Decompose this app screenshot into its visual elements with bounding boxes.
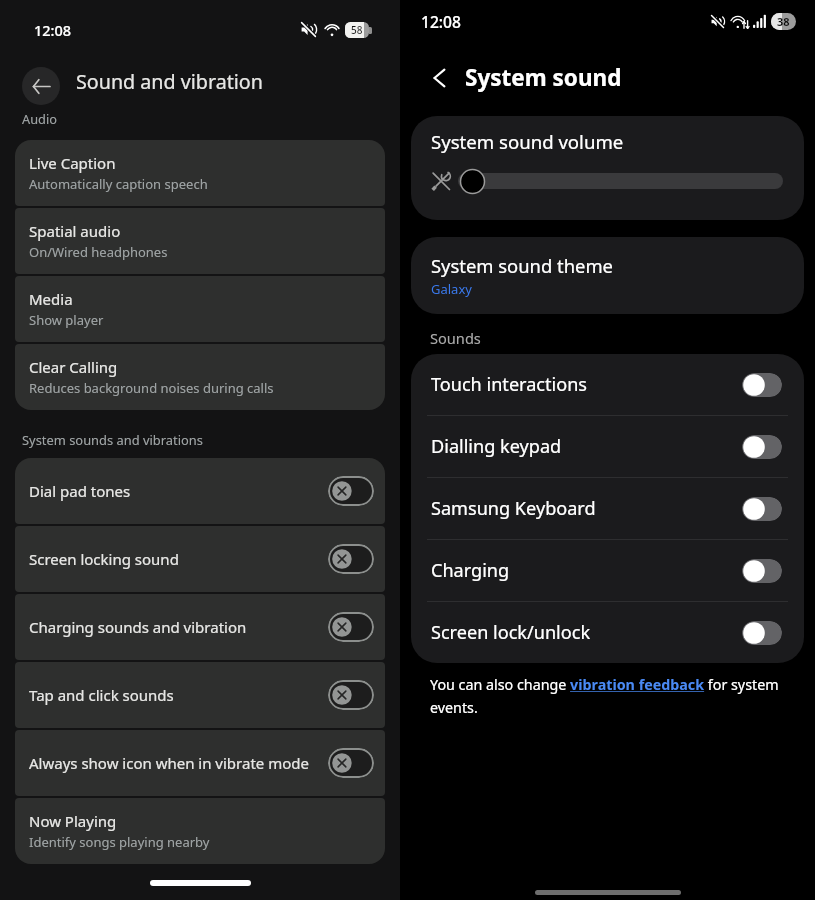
staticText: Tap and click sounds bbox=[29, 685, 328, 705]
button[interactable]: Spatial audio bbox=[15, 208, 385, 274]
button[interactable]: Toggle Always show icon when in vibrate … bbox=[328, 748, 374, 778]
button[interactable]: Back bbox=[424, 62, 456, 94]
button[interactable]: Toggle Charging bbox=[742, 559, 782, 583]
staticText: Show player bbox=[29, 311, 104, 329]
button[interactable]: Charging sounds and vibration bbox=[15, 594, 385, 660]
staticText: Spatial audio bbox=[29, 221, 121, 241]
button[interactable]: Toggle Charging sounds and vibration bbox=[328, 612, 374, 642]
button[interactable]: Media bbox=[15, 276, 385, 342]
staticText: Automatically caption speech bbox=[29, 175, 208, 193]
button[interactable]: Always show icon when in vibrate mode bbox=[15, 730, 385, 796]
staticText: Galaxy bbox=[431, 280, 472, 298]
button[interactable]: Dialling keypad bbox=[411, 416, 804, 477]
staticText: Dial pad tones bbox=[29, 481, 328, 501]
staticText: Samsung Keyboard bbox=[431, 496, 742, 521]
button[interactable]: Charging bbox=[411, 540, 804, 601]
button[interactable]: Back bbox=[22, 67, 60, 105]
staticText: Sounds bbox=[430, 328, 481, 348]
staticText: On/Wired headphones bbox=[29, 243, 168, 261]
staticText: Screen locking sound bbox=[29, 549, 328, 569]
staticText: Media bbox=[29, 289, 73, 309]
button[interactable]: Dial pad tones bbox=[15, 458, 385, 524]
button[interactable]: Samsung Keyboard bbox=[411, 478, 804, 539]
button[interactable]: Live Caption bbox=[15, 140, 385, 206]
button[interactable]: Screen locking sound bbox=[15, 526, 385, 592]
button[interactable]: Now Playing bbox=[15, 798, 385, 864]
button[interactable]: Toggle Dial pad tones bbox=[328, 476, 374, 506]
button[interactable]: Toggle Screen lock/unlock bbox=[742, 621, 782, 645]
button[interactable]: Toggle Dialling keypad bbox=[742, 435, 782, 459]
staticText: Live Caption bbox=[29, 153, 116, 173]
staticText: Always show icon when in vibrate mode bbox=[29, 753, 328, 773]
staticText: Sound and vibration bbox=[76, 68, 263, 95]
staticText: 12:08 bbox=[34, 20, 72, 40]
staticText: Reduces background noises during calls bbox=[29, 379, 274, 397]
button[interactable]: Clear Calling bbox=[15, 344, 385, 410]
staticText: Dialling keypad bbox=[431, 434, 742, 459]
staticText: Audio bbox=[22, 110, 57, 127]
button[interactable]: Tap and click sounds bbox=[15, 662, 385, 728]
staticText: Charging bbox=[431, 558, 742, 583]
button[interactable]: Toggle Tap and click sounds bbox=[328, 680, 374, 710]
staticText: Now Playing bbox=[29, 811, 117, 831]
staticText: System sound theme bbox=[431, 253, 613, 278]
staticText: 58 bbox=[351, 23, 363, 37]
staticText: Identify songs playing nearby bbox=[29, 833, 210, 851]
staticText: 38 bbox=[777, 14, 790, 29]
staticText: System sound bbox=[465, 62, 622, 93]
staticText: Screen lock/unlock bbox=[431, 620, 742, 645]
staticText: Touch interactions bbox=[431, 372, 742, 397]
button[interactable]: Toggle Touch interactions bbox=[742, 373, 782, 397]
staticText: Clear Calling bbox=[29, 357, 118, 377]
staticText: Charging sounds and vibration bbox=[29, 617, 328, 637]
staticText: 12:08 bbox=[421, 11, 461, 32]
staticText: System sound volume bbox=[431, 129, 624, 154]
staticText: You can also change vibration feedback f… bbox=[430, 675, 790, 718]
button[interactable]: Toggle Screen locking sound bbox=[328, 544, 374, 574]
staticText: System sounds and vibrations bbox=[22, 431, 204, 449]
button[interactable]: System sound theme bbox=[411, 237, 804, 314]
button[interactable]: Screen lock/unlock bbox=[411, 602, 804, 663]
button[interactable]: Touch interactions bbox=[411, 354, 804, 415]
button[interactable]: Toggle Samsung Keyboard bbox=[742, 497, 782, 521]
